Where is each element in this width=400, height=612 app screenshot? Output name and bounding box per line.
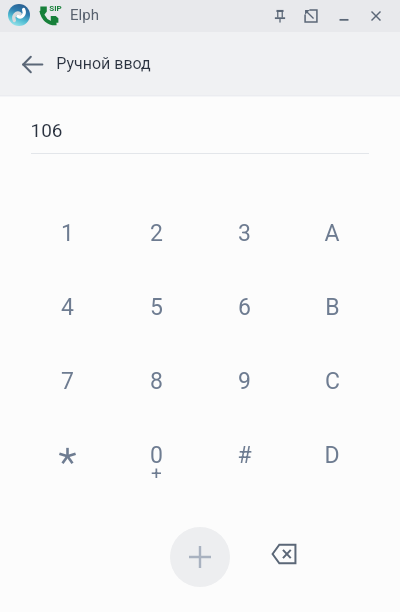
button[interactable]: 4 bbox=[23, 270, 112, 344]
button[interactable]: D bbox=[288, 418, 376, 492]
staticText: A bbox=[324, 220, 340, 247]
staticText: C bbox=[325, 368, 340, 395]
button[interactable]: Back bbox=[12, 44, 52, 84]
button[interactable]: 9 bbox=[200, 344, 288, 418]
button[interactable]: C bbox=[288, 344, 376, 418]
button[interactable]: A bbox=[288, 196, 376, 270]
button[interactable]: 5 bbox=[112, 270, 200, 344]
staticText: 0 bbox=[150, 442, 163, 469]
staticText: 2 bbox=[150, 220, 163, 247]
button[interactable]: 6 bbox=[200, 270, 288, 344]
staticText: 4 bbox=[61, 294, 74, 321]
staticText: 8 bbox=[150, 368, 163, 395]
button[interactable]: 2 bbox=[112, 196, 200, 270]
staticText: 1 bbox=[61, 220, 74, 247]
staticText: + bbox=[151, 462, 162, 484]
staticText: B bbox=[325, 294, 340, 321]
staticText: D bbox=[324, 442, 340, 469]
staticText: Elph bbox=[70, 6, 99, 24]
button[interactable]: Restore bbox=[299, 4, 323, 28]
button[interactable]: Pin bbox=[268, 4, 292, 28]
button[interactable]: 7 bbox=[23, 344, 112, 418]
button[interactable]: 1 bbox=[23, 196, 112, 270]
staticText: Ручной ввод bbox=[56, 54, 151, 73]
button[interactable]: Close bbox=[364, 4, 388, 28]
button[interactable]: Backspace bbox=[262, 532, 306, 576]
staticText: 106 bbox=[30, 119, 63, 141]
button[interactable]: B bbox=[288, 270, 376, 344]
staticText: SIP bbox=[49, 4, 62, 13]
button[interactable] bbox=[23, 418, 112, 492]
staticText: 3 bbox=[238, 220, 251, 247]
staticText: 5 bbox=[150, 294, 163, 321]
staticText: 7 bbox=[61, 368, 74, 395]
button[interactable]: # bbox=[200, 418, 288, 492]
staticText: # bbox=[237, 442, 252, 469]
staticText: 6 bbox=[238, 294, 251, 321]
button[interactable]: Add bbox=[170, 527, 230, 587]
button[interactable]: 3 bbox=[200, 196, 288, 270]
button[interactable]: Minimize bbox=[332, 4, 356, 28]
button[interactable]: 8 bbox=[112, 344, 200, 418]
button[interactable]: 0 bbox=[112, 418, 200, 492]
staticText: 9 bbox=[238, 368, 251, 395]
